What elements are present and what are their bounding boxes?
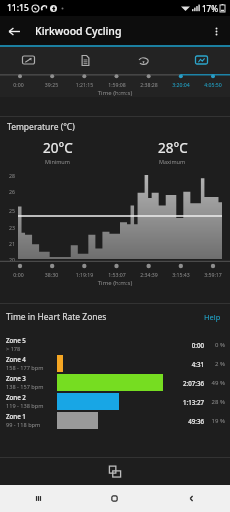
- staticText: 23: [0, 224, 15, 231]
- staticText: Help: [204, 312, 221, 322]
- staticText: Maximum: [159, 158, 186, 165]
- button[interactable]: Map: [0, 47, 57, 73]
- staticText: Time in Heart Rate Zones: [6, 311, 107, 323]
- staticText: > 178: [6, 345, 21, 353]
- staticText: 28 %: [208, 398, 225, 406]
- staticText: 2:07:36: [173, 379, 204, 387]
- staticText: 4:31: [173, 360, 204, 368]
- staticText: 158 - 177 bpm: [6, 364, 44, 372]
- button[interactable]: Details: [57, 47, 114, 73]
- button[interactable]: Navigate up: [0, 17, 28, 45]
- staticText: Zone 3: [6, 374, 26, 382]
- staticText: Zone 4: [6, 355, 26, 363]
- staticText: Zone 1: [6, 412, 26, 420]
- button[interactable]: Back: [153, 485, 230, 512]
- staticText: 38:30: [35, 271, 68, 278]
- staticText: 99 - 118 bpm: [6, 421, 41, 429]
- button[interactable]: More options: [202, 17, 230, 45]
- staticText: 11:15: [7, 2, 29, 14]
- staticText: 119 - 138 bpm: [6, 402, 44, 410]
- staticText: 138 - 157 bpm: [6, 383, 44, 391]
- staticText: Time (h:m:s): [0, 279, 230, 287]
- staticText: 0:00: [2, 81, 35, 88]
- staticText: 2 %: [208, 360, 225, 368]
- staticText: 28: [0, 172, 15, 179]
- button[interactable]: Recent apps: [0, 485, 76, 512]
- staticText: 21: [0, 240, 15, 247]
- staticText: 49:36: [173, 417, 204, 425]
- staticText: 1:13:27: [173, 398, 204, 406]
- button[interactable]: Zone 1: [0, 411, 230, 430]
- staticText: 49 %: [208, 379, 225, 387]
- button[interactable]: Zone 2: [0, 392, 230, 411]
- staticText: 39:25: [35, 81, 68, 88]
- staticText: 20°C: [43, 139, 73, 157]
- button[interactable]: Compare activity: [104, 461, 126, 483]
- staticText: 0:00: [2, 271, 35, 278]
- staticText: Kirkwood Cycling: [35, 24, 122, 38]
- staticText: 17%: [202, 3, 218, 14]
- button[interactable]: Charts: [172, 47, 230, 73]
- button[interactable]: Zone 3: [0, 373, 230, 392]
- staticText: 1:59:08: [101, 81, 133, 88]
- staticText: Zone 5: [6, 336, 26, 344]
- staticText: 2:34:39: [133, 271, 165, 278]
- button[interactable]: Zone 5: [0, 335, 230, 354]
- staticText: 26: [0, 188, 15, 195]
- staticText: 2:38:28: [133, 81, 165, 88]
- staticText: Minimum: [45, 158, 70, 165]
- staticText: 25: [0, 207, 15, 214]
- staticText: 3:15:43: [165, 271, 197, 278]
- staticText: 0 %: [208, 341, 225, 349]
- staticText: Temperature (°C): [7, 121, 75, 133]
- staticText: Time (h:m:s): [0, 89, 230, 97]
- staticText: 20: [0, 256, 15, 263]
- staticText: 1:19:19: [68, 271, 101, 278]
- staticText: 0:00: [173, 341, 204, 349]
- staticText: 19 %: [208, 417, 225, 425]
- button[interactable]: Help: [202, 311, 223, 323]
- button[interactable]: Home: [76, 485, 153, 512]
- staticText: 1:21:15: [68, 81, 101, 88]
- staticText: 3:59:17: [197, 271, 229, 278]
- staticText: 28°C: [158, 139, 188, 157]
- button[interactable]: Zone 4: [0, 354, 230, 373]
- staticText: Zone 2: [6, 393, 26, 401]
- staticText: 3:20:04: [165, 81, 197, 88]
- staticText: 1:53:07: [101, 271, 133, 278]
- button[interactable]: Laps: [114, 47, 172, 73]
- staticText: 4:05:50: [197, 81, 229, 88]
